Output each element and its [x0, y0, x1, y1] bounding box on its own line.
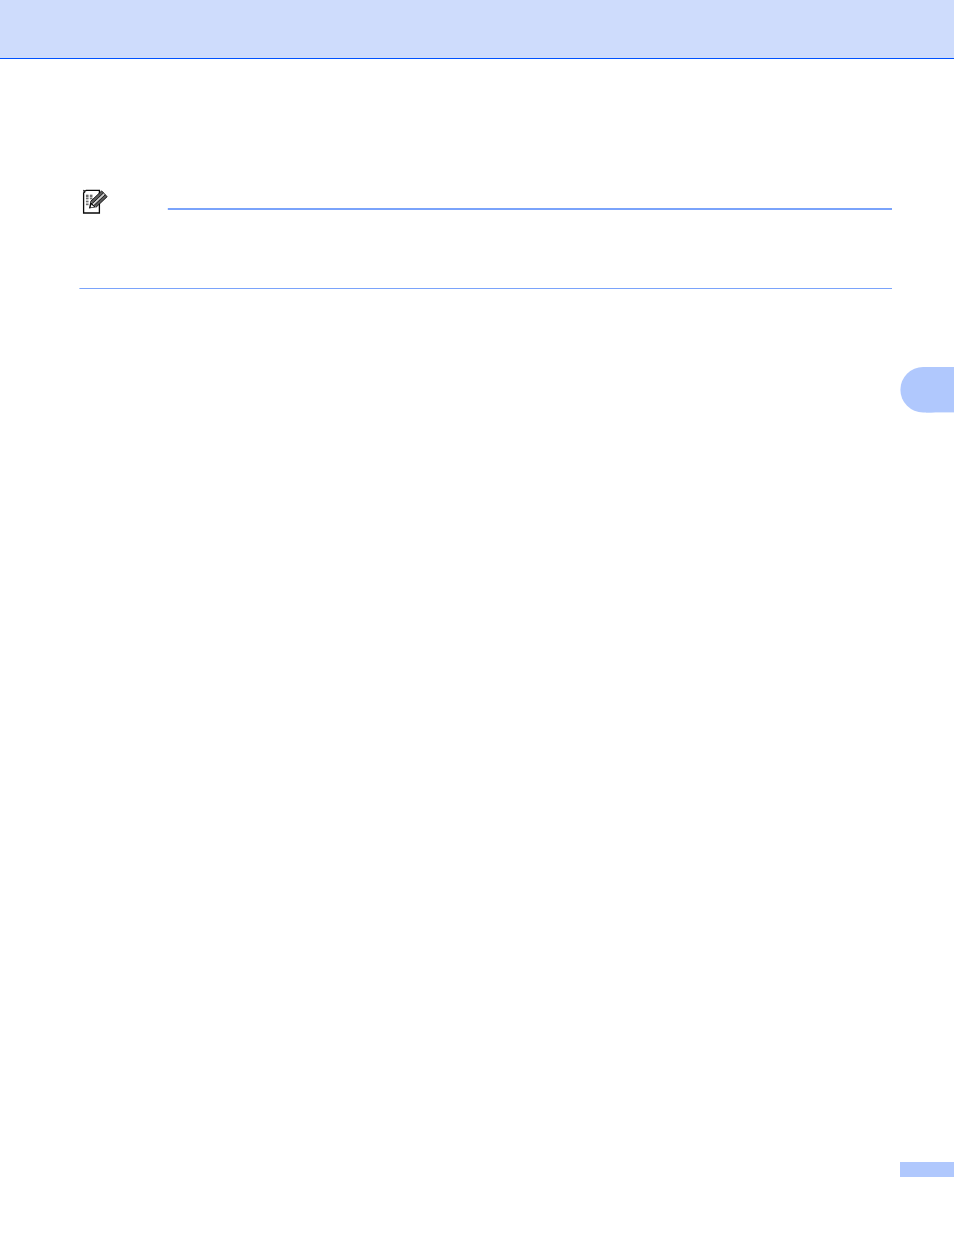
- button[interactable]: Note callout: [0, 180, 954, 295]
- other: Note: [81, 187, 109, 215]
- button[interactable]: Chapter tab: [900, 367, 954, 413]
